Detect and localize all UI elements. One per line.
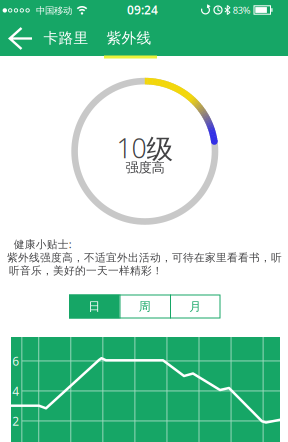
staticText: 09:24 <box>127 2 158 18</box>
staticText: 83% <box>233 4 251 16</box>
button[interactable]: Back <box>0 20 40 56</box>
staticText: 10级 <box>116 130 173 166</box>
staticText: 日 <box>88 299 100 314</box>
staticText: 听音乐，美好的一天一样精彩！ <box>9 264 163 277</box>
staticText: 6 <box>12 353 19 369</box>
staticText: 周 <box>139 299 151 314</box>
button[interactable]: 日 <box>69 294 119 318</box>
button[interactable]: 卡路里 <box>38 20 94 56</box>
button[interactable]: 紫外线 <box>101 20 157 56</box>
staticText: 强度高 <box>125 159 164 176</box>
staticText: 中国移动 <box>36 5 72 16</box>
button[interactable]: 月 <box>170 294 220 318</box>
staticText: 月 <box>189 299 201 314</box>
staticText: 卡路里 <box>43 29 88 47</box>
staticText: 2 <box>12 413 19 429</box>
button[interactable]: 周 <box>119 294 170 318</box>
staticText: 紫外线强度高，不适宜外出活动，可待在家里看看书，听 <box>7 251 282 264</box>
staticText: 紫外线 <box>106 29 151 47</box>
staticText: 4 <box>12 383 19 399</box>
staticText: 健康小贴士: <box>14 237 72 251</box>
